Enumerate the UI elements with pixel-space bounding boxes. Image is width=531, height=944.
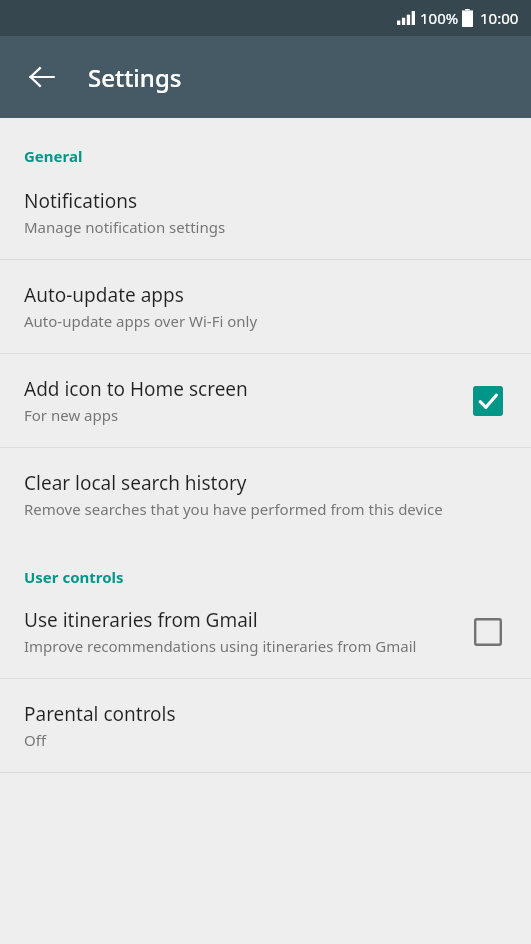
button[interactable]: Parental controls <box>0 679 531 772</box>
staticText: Add icon to Home screen <box>24 376 248 402</box>
button[interactable]: Add icon to Home screen <box>0 354 531 447</box>
staticText: General <box>24 146 83 166</box>
staticText: 10:00 <box>480 8 519 28</box>
staticText: Improve recommendations using itinerarie… <box>24 636 417 656</box>
button[interactable]: Back <box>16 51 68 103</box>
staticText: Auto-update apps over Wi-Fi only <box>24 311 258 331</box>
staticText: Settings <box>88 61 182 94</box>
staticText: Notifications <box>24 188 138 214</box>
staticText: 100% <box>420 8 459 28</box>
staticText: User controls <box>24 567 124 587</box>
button[interactable]: Notifications <box>0 166 531 259</box>
staticText: Parental controls <box>24 701 176 727</box>
button[interactable]: Add icon to Home screen toggle <box>465 378 511 424</box>
staticText: Use itineraries from Gmail <box>24 607 258 633</box>
button[interactable]: Clear local search history <box>0 448 531 541</box>
button[interactable]: Use itineraries from Gmail <box>0 587 531 678</box>
staticText: Manage notification settings <box>24 217 226 237</box>
button[interactable]: Use itineraries from Gmail toggle <box>465 609 511 655</box>
staticText: Auto-update apps <box>24 282 184 308</box>
staticText: For new apps <box>24 405 119 425</box>
staticText: Clear local search history <box>24 470 247 496</box>
button[interactable]: Auto-update apps <box>0 260 531 353</box>
staticText: Remove searches that you have performed … <box>24 499 443 519</box>
staticText: Off <box>24 730 47 750</box>
